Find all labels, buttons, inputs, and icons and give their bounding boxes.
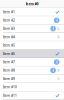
staticText: Item #4 [3,35,15,39]
staticText: Item #9 [3,76,15,81]
button[interactable]: Item #6 [0,50,64,58]
button[interactable]: Item #2 [0,16,64,25]
button[interactable]: Item #4 [0,33,64,41]
staticText: Item #0 [25,2,38,6]
button[interactable]: Item #7 [0,58,64,66]
button[interactable]: Item #10 [0,83,64,91]
staticText: i [53,67,54,73]
staticText: Item #8 [3,68,15,73]
staticText: i [56,59,57,65]
button[interactable]: Item #11 [0,91,64,100]
staticText: Item #1 [3,10,15,14]
staticText: Item #5 [3,43,15,47]
staticText: Item #7 [3,60,15,64]
staticText: Item #3 [3,26,15,31]
button[interactable]: Item #9 [0,75,64,83]
staticText: Item #11 [3,93,17,98]
staticText: Item #2 [3,18,15,22]
button[interactable]: Item #8 [0,66,64,75]
staticText: Item #10 [3,85,17,89]
button[interactable]: Item #1 [0,8,64,16]
button[interactable]: Item #3 [0,25,64,33]
staticText: i [56,17,57,23]
staticText: i [53,26,54,31]
staticText: Item #6 [3,51,15,56]
button[interactable]: Item #5 [0,41,64,50]
